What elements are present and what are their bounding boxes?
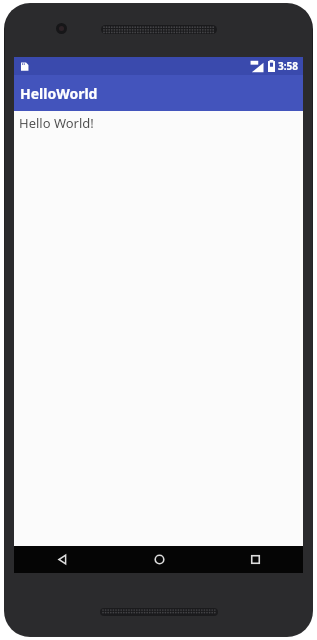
staticText: HelloWorld (20, 84, 98, 103)
button[interactable]: Home (111, 546, 207, 573)
staticText: 3:58 (278, 59, 298, 73)
button[interactable]: Recent apps (207, 546, 303, 573)
button[interactable]: HelloWorld (14, 75, 303, 111)
staticText: Hello World! (19, 114, 94, 132)
button[interactable]: Back (14, 546, 111, 573)
